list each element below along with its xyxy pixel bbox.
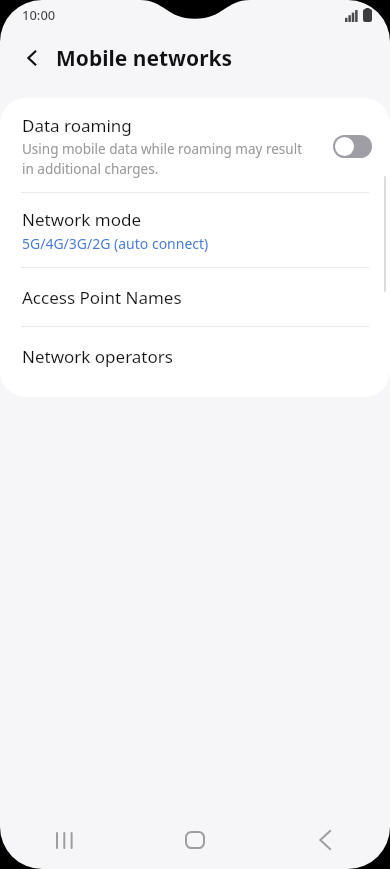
staticText: Data roaming xyxy=(22,114,132,137)
button[interactable]: Data roaming xyxy=(0,98,390,192)
staticText: 10:00 xyxy=(22,6,56,24)
button[interactable]: Back xyxy=(12,38,52,78)
button[interactable]: Recent apps xyxy=(0,811,130,869)
button[interactable]: Access Point Names xyxy=(0,268,390,326)
staticText: Using mobile data while roaming may resu… xyxy=(22,140,307,178)
button[interactable]: Home xyxy=(130,811,260,869)
staticText: Access Point Names xyxy=(22,286,182,309)
button[interactable]: Network operators xyxy=(0,327,390,385)
staticText: Mobile networks xyxy=(56,44,233,73)
staticText: Network mode xyxy=(22,208,142,231)
button[interactable]: Back xyxy=(260,811,390,869)
staticText: 5G/4G/3G/2G (auto connect) xyxy=(22,234,209,253)
button[interactable]: Network mode xyxy=(0,193,390,267)
button[interactable]: Data roaming toggle xyxy=(333,135,372,158)
staticText: Network operators xyxy=(22,345,173,368)
